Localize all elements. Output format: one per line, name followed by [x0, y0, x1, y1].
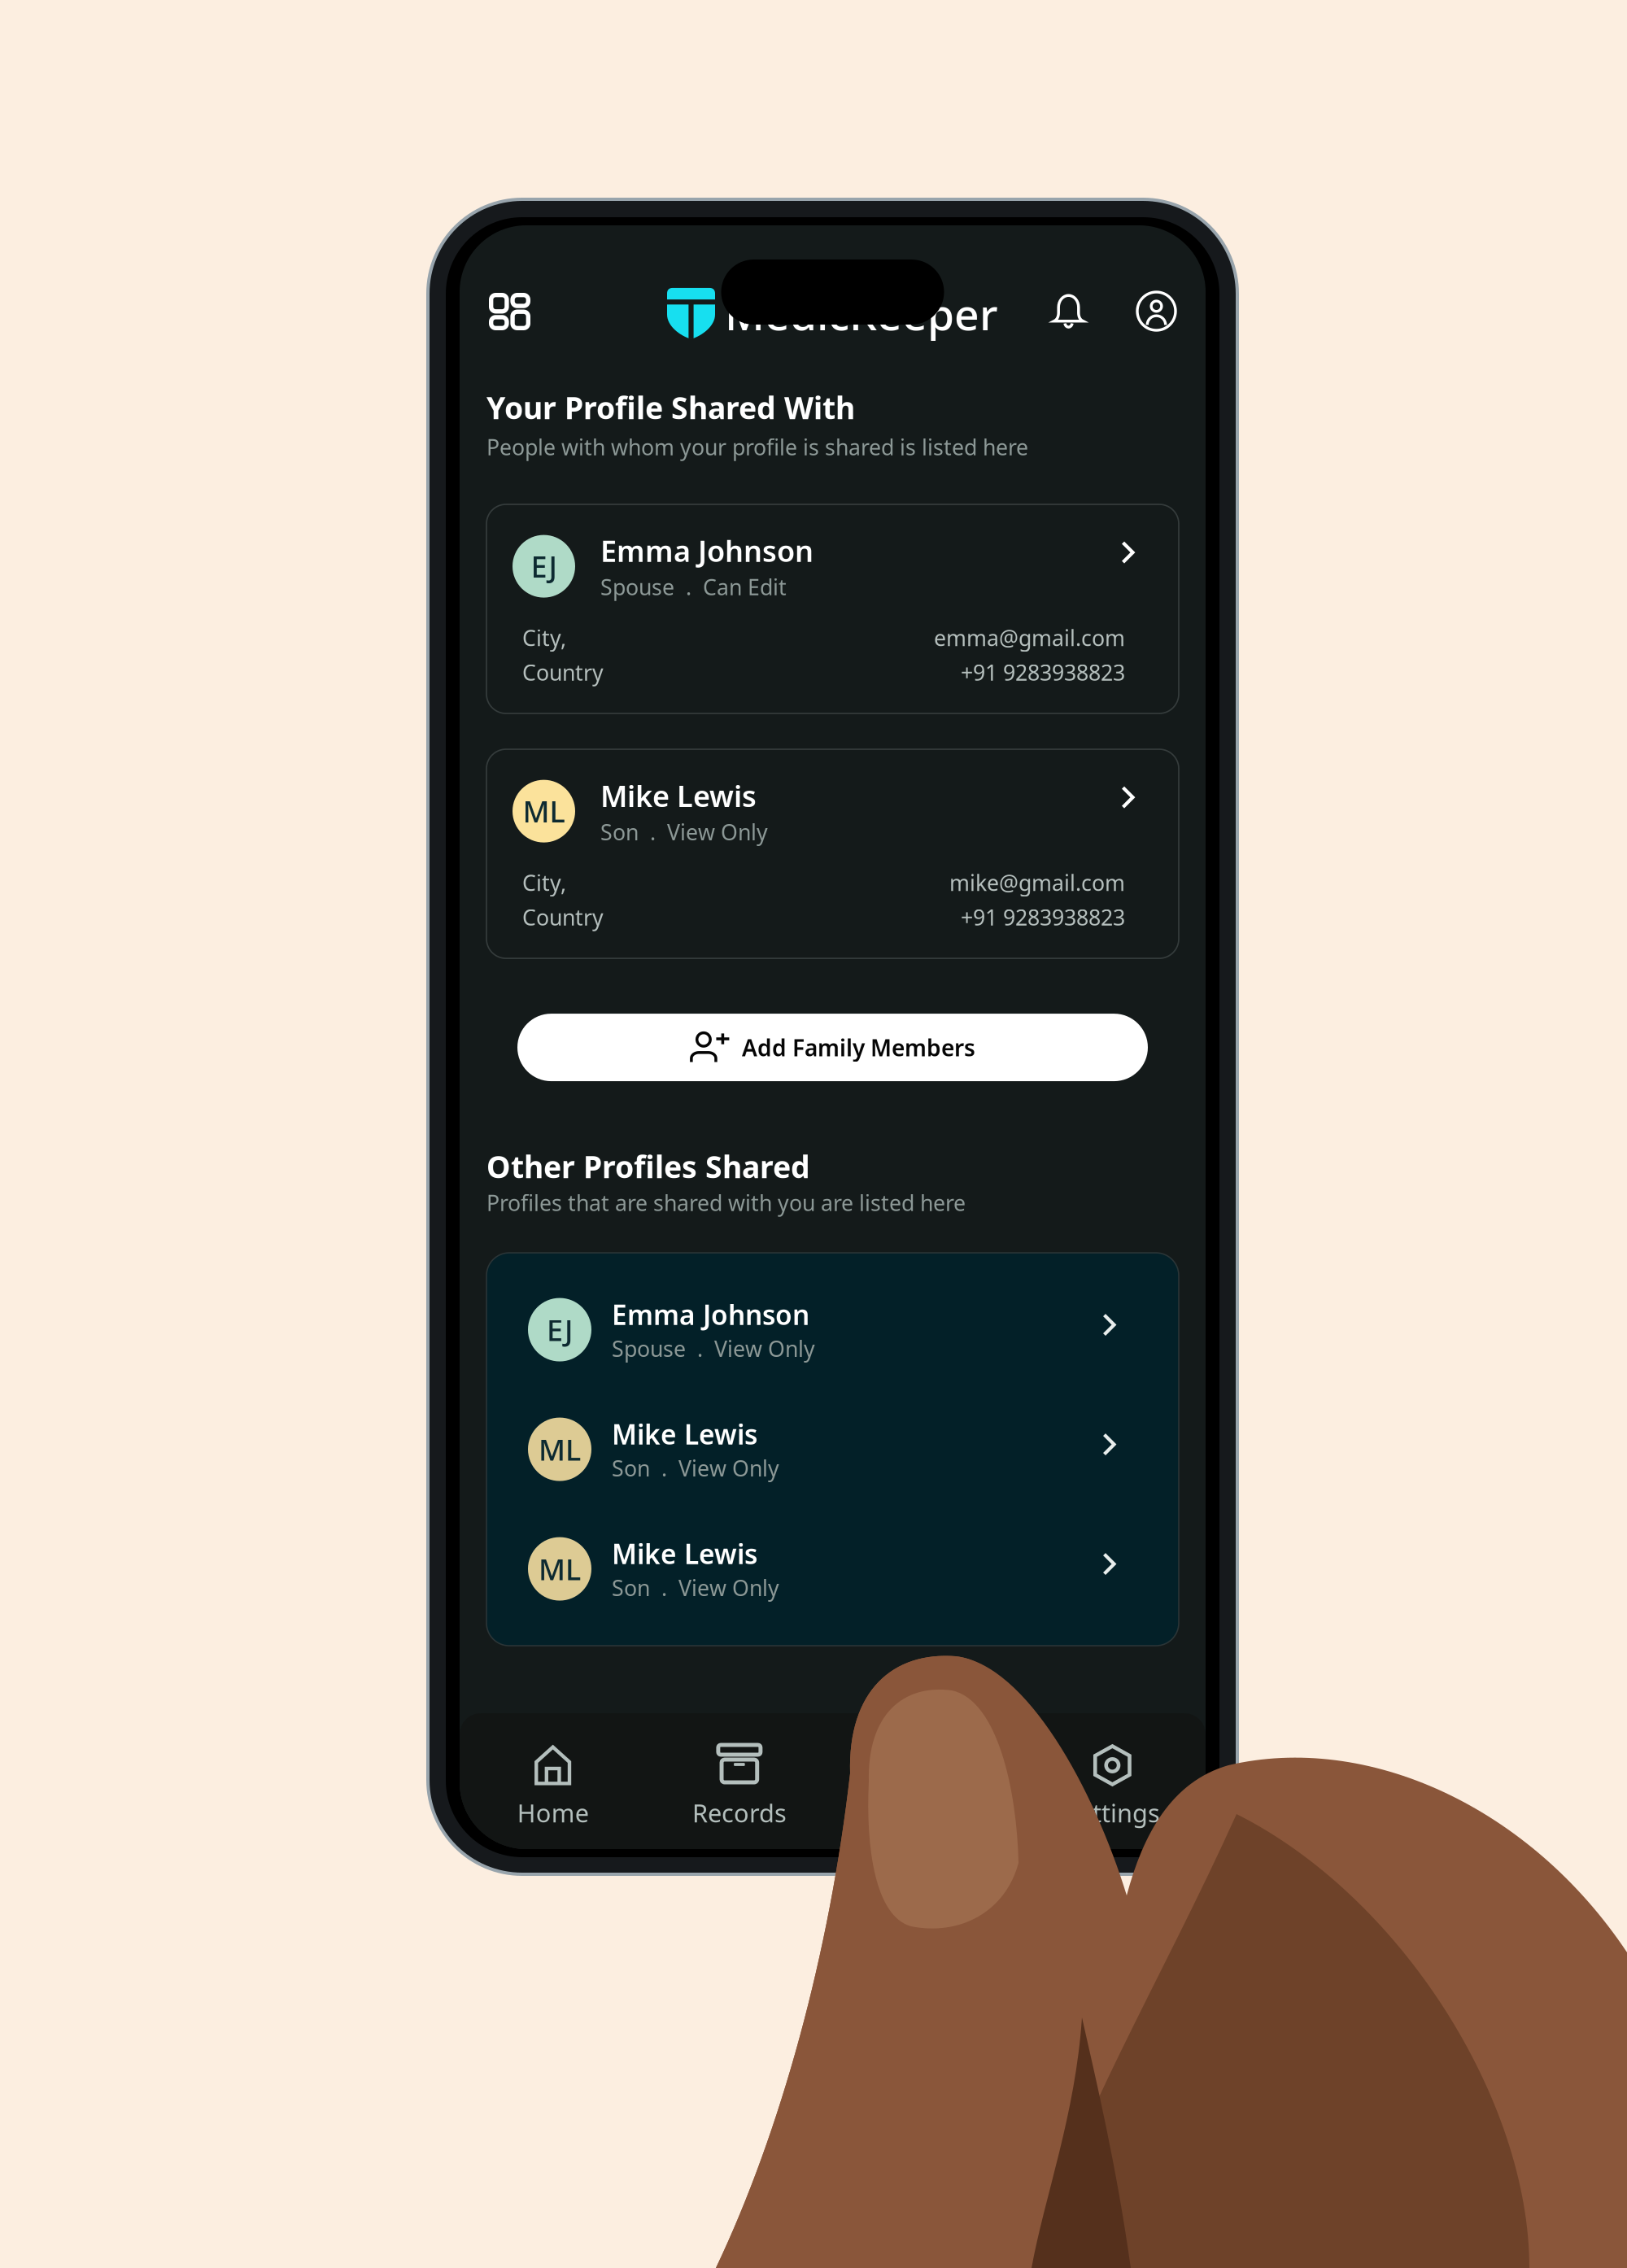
staticText: Home [517, 1796, 589, 1829]
staticText: ML [539, 1430, 581, 1469]
staticText: Your Profile Shared With [486, 387, 855, 428]
staticText: ML [523, 792, 565, 831]
staticText: EJ [547, 1310, 573, 1349]
staticText: Settings [1065, 1796, 1160, 1829]
staticText: Spouse . Can Edit [600, 573, 787, 601]
staticText: Son . View Only [600, 817, 768, 846]
staticText: City, [522, 623, 566, 652]
button[interactable]: Dashboard [474, 277, 545, 347]
staticText: Country [522, 658, 604, 687]
staticText: +91 9283938823 [961, 658, 1125, 687]
button[interactable]: ML [486, 1390, 1179, 1509]
button[interactable]: ML [486, 1509, 1179, 1629]
staticText: Son . View Only [612, 1454, 779, 1482]
staticText: Profiles that are shared with you are li… [486, 1188, 966, 1217]
button[interactable]: Home [460, 1745, 646, 1829]
staticText: EJ [531, 547, 557, 586]
staticText: Emma Johnson [612, 1296, 809, 1332]
button[interactable]: ML [486, 749, 1179, 958]
staticText: +91 9283938823 [961, 903, 1125, 932]
button[interactable]: Settings [1019, 1745, 1206, 1829]
staticText: Spouse . View Only [612, 1334, 815, 1363]
staticText: MedicKeeper [725, 285, 998, 342]
staticText: Emma Johnson [600, 531, 813, 570]
staticText: Country [522, 903, 604, 932]
button[interactable]: Account [1123, 277, 1190, 345]
button[interactable]: EJ [486, 504, 1179, 713]
staticText: Son . View Only [612, 1573, 779, 1602]
staticText: mike@gmail.com [949, 868, 1125, 897]
staticText: People with whom your profile is shared … [486, 432, 1028, 461]
button[interactable]: Add Family Members [517, 1014, 1148, 1081]
staticText: Mike Lewis [612, 1536, 757, 1572]
staticText: Mike Lewis [600, 776, 757, 815]
button[interactable]: Notifications [1037, 277, 1100, 345]
button[interactable]: EJ [486, 1270, 1179, 1390]
staticText: emma@gmail.com [934, 623, 1125, 652]
button[interactable]: Records [646, 1745, 833, 1829]
staticText: Add Family Members [742, 1032, 975, 1063]
staticText: Other Profiles Shared [486, 1146, 810, 1187]
staticText: City, [522, 868, 566, 897]
staticText: Records [692, 1796, 787, 1829]
staticText: Mike Lewis [612, 1416, 757, 1452]
button[interactable]: Reports [833, 1745, 1019, 1829]
staticText: ML [539, 1549, 581, 1588]
